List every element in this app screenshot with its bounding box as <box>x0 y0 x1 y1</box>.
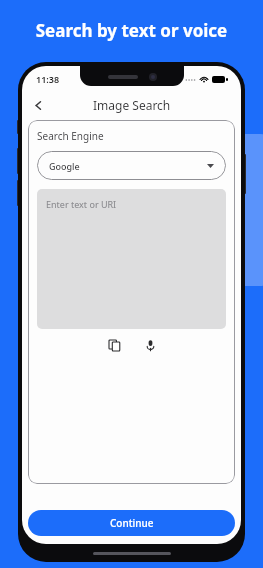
button[interactable]: Google <box>37 151 226 180</box>
button[interactable]: Continue <box>28 510 235 536</box>
button[interactable]: Enter text or URI <box>37 189 226 329</box>
button[interactable]: Voice input <box>140 335 160 355</box>
staticText: Enter text or URI <box>46 198 117 210</box>
staticText: Search Engine <box>37 129 104 143</box>
staticText: 11:38 <box>36 73 60 85</box>
button[interactable]: Back <box>27 94 49 116</box>
staticText: Continue <box>110 516 154 530</box>
staticText: Image Search <box>93 97 171 113</box>
staticText: Google <box>49 160 80 172</box>
button[interactable]: Paste from clipboard <box>104 335 124 355</box>
staticText: Search by text or voice <box>0 19 263 42</box>
